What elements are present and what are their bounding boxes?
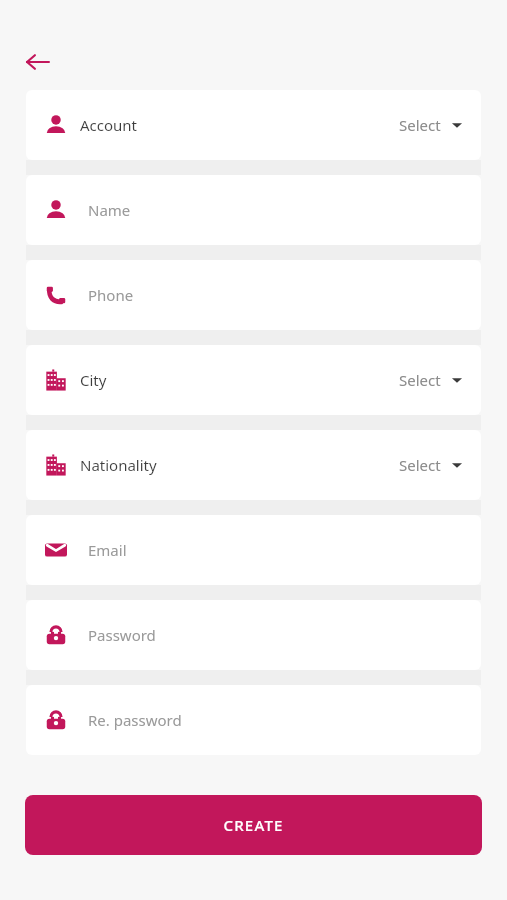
staticText: Account (80, 115, 138, 135)
button[interactable]: Password (26, 600, 481, 670)
staticText: Select (399, 115, 441, 135)
button[interactable]: Account (26, 90, 481, 160)
staticText: Phone (88, 285, 134, 305)
button[interactable]: Nationality (26, 430, 481, 500)
staticText: City (80, 370, 107, 390)
staticText: Email (88, 540, 127, 560)
button[interactable]: Back (14, 38, 62, 86)
button[interactable]: CREATE (25, 795, 482, 855)
button[interactable]: Phone (26, 260, 481, 330)
button[interactable]: Re. password (26, 685, 481, 755)
staticText: CREATE (223, 815, 284, 835)
staticText: Select (399, 370, 441, 390)
button[interactable]: Name (26, 175, 481, 245)
staticText: Name (88, 200, 131, 220)
staticText: Password (88, 625, 156, 645)
button[interactable]: Email (26, 515, 481, 585)
staticText: Nationality (80, 455, 157, 475)
staticText: Select (399, 455, 441, 475)
staticText: Re. password (88, 710, 182, 730)
button[interactable]: City (26, 345, 481, 415)
